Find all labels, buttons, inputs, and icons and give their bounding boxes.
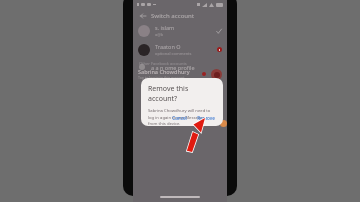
staticText: Remove	[197, 115, 215, 121]
staticText: Traaton O	[155, 43, 181, 50]
staticText: Sabrina Chowdhury	[138, 68, 190, 75]
button[interactable]: Remove	[193, 113, 219, 123]
button[interactable]: a a n ome profile	[133, 59, 227, 75]
staticText: Sabrina Chowdhury will need to log in ag…	[148, 108, 217, 126]
button[interactable]: More options	[211, 69, 222, 80]
staticText: Other Facebook accounts	[139, 61, 187, 66]
staticText: a a n ome profile	[151, 64, 195, 71]
staticText: s. islam	[155, 24, 175, 31]
staticText: Switch account	[151, 12, 195, 20]
staticText: Tap to log in to this account	[138, 75, 185, 80]
button[interactable]: Cancel	[168, 113, 191, 123]
button[interactable]: Sabrina Chowdhury	[133, 67, 227, 81]
staticText: Cancel	[172, 115, 187, 121]
button[interactable]: s. islam	[133, 21, 227, 40]
staticText: Remove this account?	[148, 84, 217, 104]
staticText: a@b	[155, 32, 164, 37]
button[interactable]: Back	[138, 11, 147, 20]
button[interactable]: Traaton O	[133, 40, 227, 59]
staticText: optional comments	[155, 51, 192, 56]
